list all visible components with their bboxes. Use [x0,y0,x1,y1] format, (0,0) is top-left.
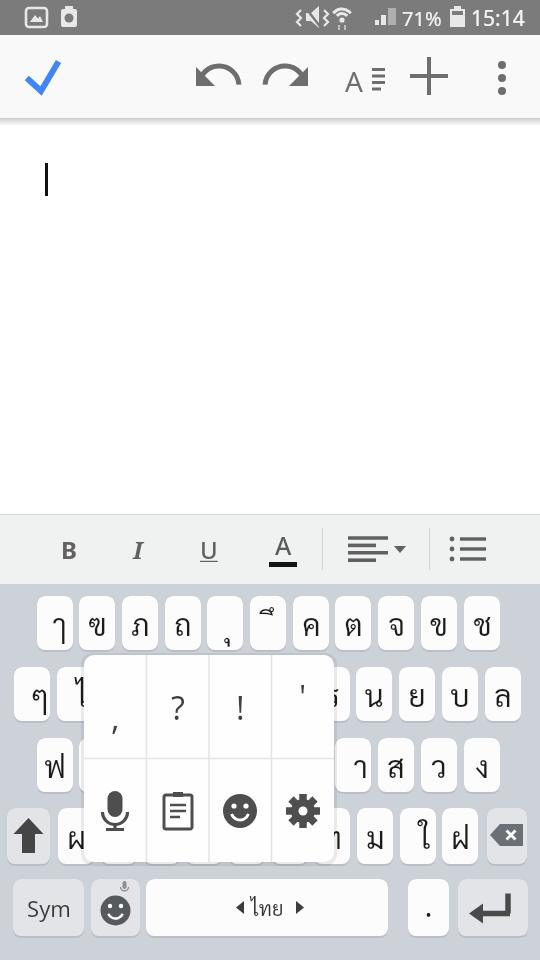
button[interactable] [147,759,209,862]
button[interactable]: ด [165,738,201,794]
staticText: ใ [419,817,431,856]
button[interactable]: ั [228,667,264,723]
button[interactable]: ฃ [79,596,115,652]
staticText: A [275,528,292,562]
button[interactable]: I [114,525,162,573]
button[interactable] [458,879,528,938]
button[interactable]: ร [314,667,350,723]
staticText: ล [494,675,512,714]
button[interactable]: U [185,525,233,573]
staticText: ไทย [251,895,284,921]
button[interactable] [487,808,527,866]
button[interactable]: ท [314,808,350,866]
staticText: ง [475,746,489,785]
button[interactable]: ห [79,738,115,794]
staticText: ค [302,604,321,643]
button[interactable]: ' [272,655,334,758]
button[interactable]: ก [122,738,158,794]
button[interactable]: ว [421,738,457,794]
button[interactable]: ๅ [37,596,73,652]
button[interactable]: ึ [250,596,286,652]
button[interactable] [263,53,311,101]
button[interactable]: ไทย [146,879,388,938]
staticText: ร [325,675,340,714]
button[interactable]: ่ [293,738,329,794]
button[interactable]: B [45,525,93,573]
button[interactable]: ! [209,655,271,758]
button[interactable]: ไ [57,667,93,723]
staticText: อ [195,817,213,856]
button[interactable]: ง [464,738,500,794]
button[interactable]: ฝ [442,808,478,866]
button[interactable]: . [408,879,449,938]
button[interactable]: A [336,53,384,101]
staticText: ฝ [451,817,470,856]
staticText: ! [236,686,245,730]
button[interactable] [444,525,492,573]
staticText: ฟ [44,746,66,785]
button[interactable]: ใ [400,808,436,866]
staticText: จ [388,604,405,643]
button[interactable]: บ [442,667,478,723]
button[interactable]: ะ [185,667,221,723]
button[interactable]: ุ [207,596,243,652]
button[interactable]: ป [101,808,137,866]
button[interactable] [272,759,334,862]
button[interactable]: เ [207,738,243,794]
staticText: ก [131,746,149,785]
button[interactable] [193,53,241,101]
button[interactable]: ๆ [14,667,50,723]
button[interactable] [91,879,140,938]
staticText: ไ [76,675,88,714]
button[interactable]: ต [335,596,371,652]
button[interactable]: ผ [58,808,94,866]
button[interactable]: A [259,525,307,573]
staticText: ๆ [30,675,49,714]
button[interactable]: ช [464,596,500,652]
button[interactable]: , [84,655,146,758]
button[interactable]: อ [186,808,222,866]
button[interactable] [84,759,146,862]
staticText: ผ [67,817,86,856]
button[interactable]: ิ [229,808,265,866]
button[interactable]: ค [293,596,329,652]
button[interactable] [406,53,454,101]
button[interactable]: ข [421,596,457,652]
button[interactable]: ื [272,808,308,866]
button[interactable] [209,759,271,862]
button[interactable]: ภ [122,596,158,652]
button[interactable] [340,525,410,573]
button[interactable]: ส [378,738,414,794]
button[interactable]: พ [143,667,179,723]
button[interactable]: จ [378,596,414,652]
button[interactable] [7,808,50,866]
button[interactable]: ล [485,667,521,723]
button[interactable]: ้ [250,738,286,794]
staticText: B [61,533,77,566]
button[interactable]: แ [144,808,180,866]
staticText: ว [431,746,447,785]
button[interactable]: ถ [165,596,201,652]
button[interactable]: ม [357,808,393,866]
button[interactable] [478,53,526,101]
button[interactable]: ย [399,667,435,723]
button[interactable]: ี [271,667,307,723]
button[interactable]: Sym [13,879,84,938]
staticText: ช [473,604,492,643]
staticText: ป [109,817,129,856]
staticText: า [353,746,368,785]
button[interactable]: า [335,738,371,794]
button[interactable] [18,53,66,101]
staticText: ถ [174,604,192,643]
staticText: , [111,696,120,740]
button[interactable]: ? [147,655,209,758]
button[interactable]: ฟ [37,738,73,794]
staticText: I [133,533,143,566]
button[interactable]: น [356,667,392,723]
staticText: A [345,62,363,100]
staticText: ภ [131,604,150,643]
staticText: บ [450,675,470,714]
